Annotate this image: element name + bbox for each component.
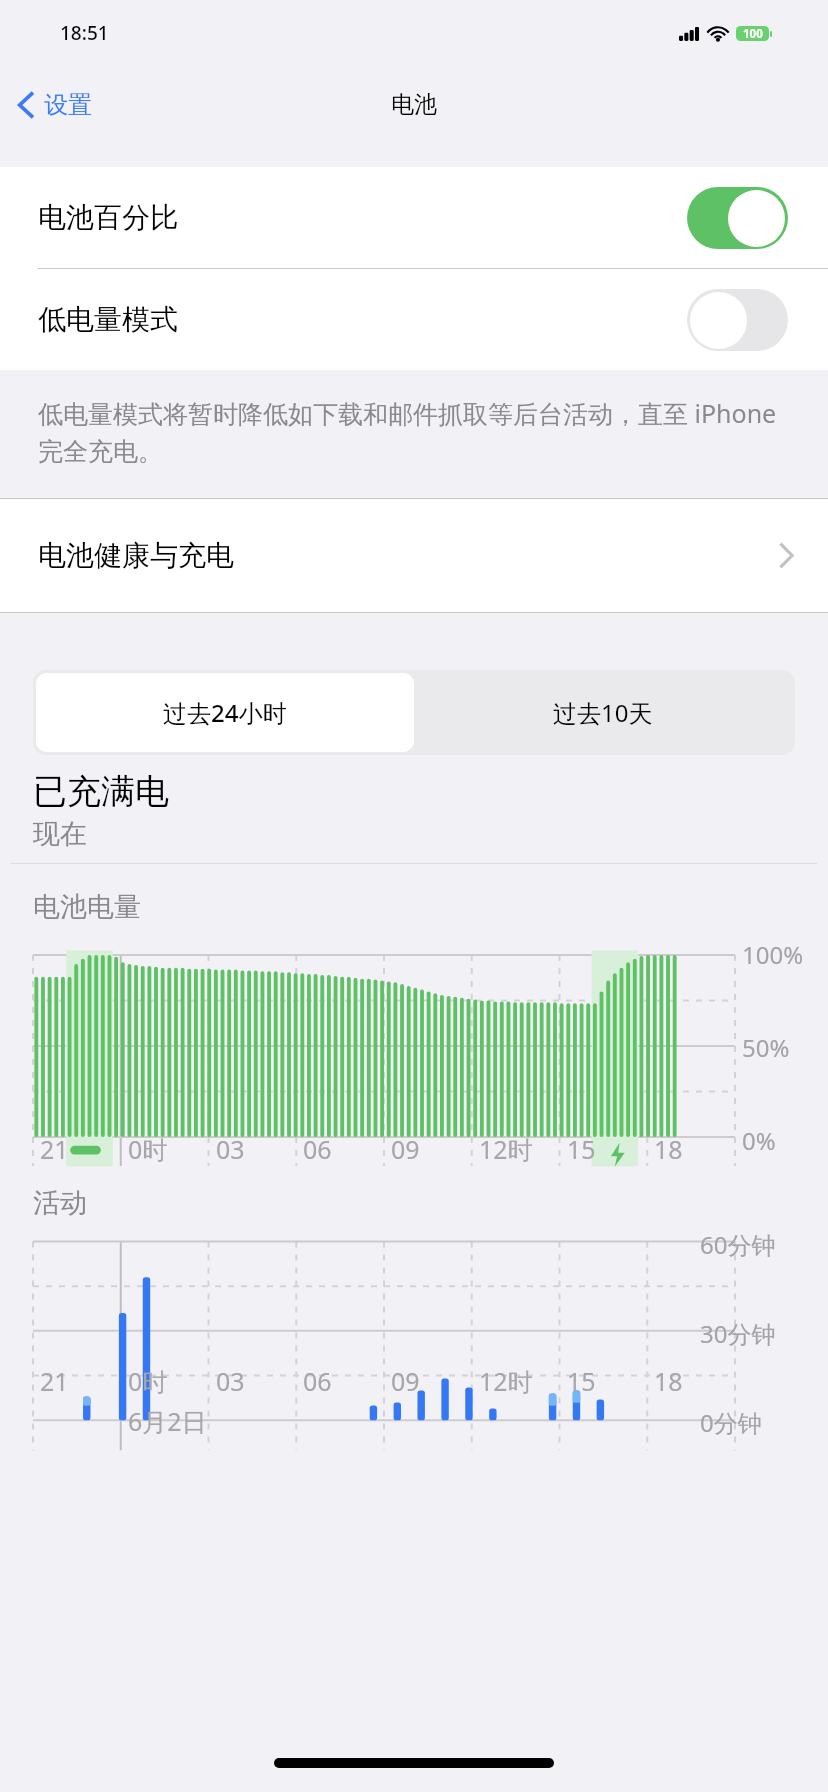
staticText: 06	[303, 1132, 332, 1166]
button[interactable]: 过去10天	[414, 673, 792, 752]
staticText: 09	[391, 1132, 420, 1166]
staticText: 12时	[479, 1132, 533, 1166]
staticText: 60分钟	[700, 1228, 776, 1261]
button[interactable]: 电池健康与充电	[0, 499, 828, 612]
staticText: 低电量模式将暂时降低如下载和邮件抓取等后台活动，直至 iPhone 完全充电。	[38, 396, 788, 468]
staticText: 30分钟	[700, 1317, 776, 1350]
staticText: 电池健康与充电	[38, 538, 778, 573]
staticText: 电池百分比	[38, 200, 687, 235]
staticText: 15	[567, 1132, 596, 1166]
staticText: 18:51	[60, 20, 109, 46]
staticText: 0时	[128, 1132, 168, 1166]
staticText: 06	[303, 1364, 332, 1398]
staticText: 电池	[391, 90, 437, 119]
staticText: 6月2日	[128, 1404, 207, 1438]
staticText: 100	[743, 26, 763, 41]
staticText: 过去10天	[553, 696, 653, 729]
staticText: 活动	[33, 1186, 87, 1220]
staticText: 现在	[33, 817, 87, 851]
staticText: 50%	[742, 1031, 790, 1064]
staticText: 0时	[128, 1364, 168, 1398]
staticText: 0%	[742, 1124, 776, 1157]
staticText: 09	[391, 1364, 420, 1398]
staticText: 0分钟	[700, 1406, 762, 1439]
button[interactable]: 低电量模式	[687, 289, 788, 351]
button[interactable]: 设置	[0, 84, 102, 126]
staticText: 已充满电	[33, 770, 169, 813]
button[interactable]: 电池百分比	[0, 167, 828, 268]
button[interactable]: 过去24小时	[36, 673, 414, 752]
staticText: 15	[567, 1364, 596, 1398]
button[interactable]: 低电量模式	[0, 269, 828, 370]
staticText: 18	[654, 1364, 683, 1398]
staticText: 21	[40, 1364, 69, 1398]
staticText: 18	[654, 1132, 683, 1166]
button[interactable]: 电池百分比	[687, 187, 788, 249]
staticText: 100%	[742, 938, 804, 971]
staticText: 过去24小时	[163, 696, 287, 729]
staticText: 21	[40, 1132, 69, 1166]
staticText: 电池电量	[33, 890, 141, 924]
staticText: 12时	[479, 1364, 533, 1398]
staticText: 03	[216, 1132, 245, 1166]
staticText: 设置	[44, 90, 92, 120]
staticText: 03	[216, 1364, 245, 1398]
staticText: 低电量模式	[38, 302, 687, 337]
